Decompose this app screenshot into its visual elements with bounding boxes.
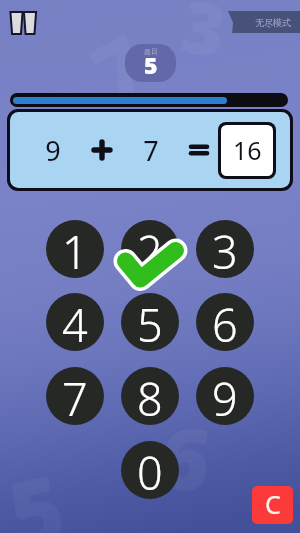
staticText: 0 [137,442,163,499]
button[interactable]: 9 [196,367,254,425]
staticText: 6 [152,395,219,518]
staticText: 5 [144,49,158,80]
staticText: 5 [137,294,163,351]
staticText: 2 [137,221,163,278]
staticText: 16 [233,133,262,167]
staticText: 7 [131,132,171,169]
staticText: 1 [62,221,88,278]
staticText: 6 [212,294,238,351]
staticText: 8 [137,368,163,425]
staticText: 4 [62,294,88,351]
button[interactable]: Clear [252,486,293,524]
button[interactable]: 1 [46,220,104,278]
button[interactable]: 2 [121,220,179,278]
staticText: 5 [0,444,75,533]
staticText: 9 [33,132,73,169]
staticText: C [265,487,281,521]
staticText: 9 [212,368,238,425]
button[interactable]: 6 [196,293,254,351]
staticText: 题目 [144,47,158,56]
staticText: 3 [175,0,234,79]
staticText: 7 [74,9,164,125]
button[interactable]: 3 [196,220,254,278]
staticText: 3 [212,221,238,278]
button[interactable]: 无尽模式 [228,11,300,33]
button[interactable]: 0 [121,441,179,499]
button[interactable]: 5 [121,293,179,351]
staticText: 无尽模式 [255,17,291,28]
button[interactable]: 4 [46,293,104,351]
button[interactable]: 题目 [125,44,176,82]
button[interactable]: Pause [8,10,38,36]
button[interactable]: 7 [46,367,104,425]
staticText: 7 [62,368,88,425]
button[interactable]: 8 [121,367,179,425]
